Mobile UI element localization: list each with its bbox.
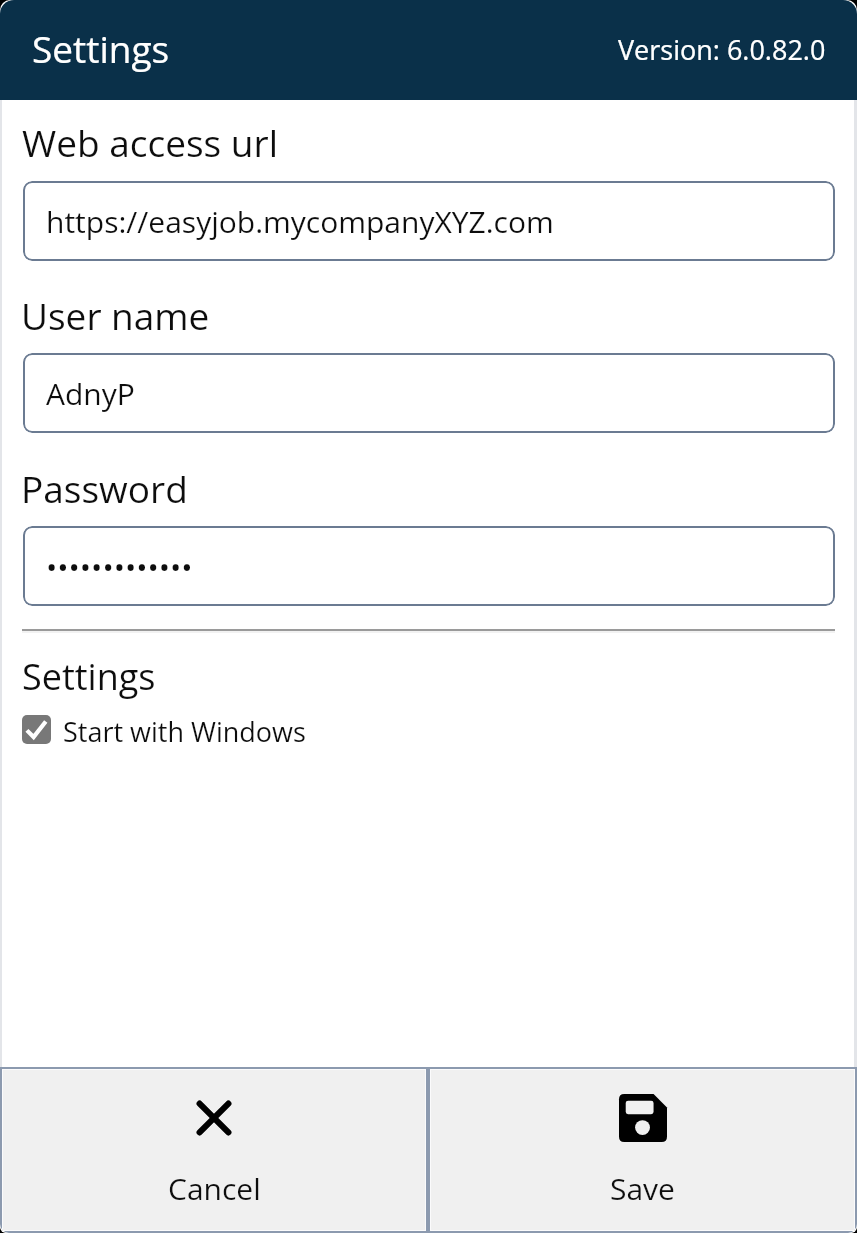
button[interactable]: Start with Windows [22, 713, 306, 745]
staticText: Web access url [22, 117, 279, 167]
staticText: Settings [22, 652, 156, 701]
button[interactable]: https://easyjob.mycompanyXYZ.com [23, 181, 835, 261]
staticText: User name [21, 290, 210, 340]
other: Save [619, 1094, 667, 1142]
button[interactable]: Cancel [3, 1070, 425, 1230]
staticText: Cancel [168, 1168, 261, 1209]
staticText: Password [21, 463, 188, 513]
staticText: Settings [32, 23, 170, 73]
staticText: https://easyjob.mycompanyXYZ.com [46, 201, 554, 242]
staticText: Save [610, 1168, 675, 1209]
staticText: AdnyP [46, 373, 135, 414]
button[interactable]: ••••••••••••• [23, 526, 835, 606]
button[interactable]: Save [431, 1070, 854, 1230]
staticText: Version: 6.0.82.0 [618, 31, 826, 68]
staticText: Start with Windows [63, 713, 306, 745]
other: Start with Windows [22, 715, 51, 744]
button[interactable]: AdnyP [23, 353, 835, 433]
staticText: ••••••••••••• [46, 546, 193, 587]
other: Cancel [196, 1100, 232, 1136]
